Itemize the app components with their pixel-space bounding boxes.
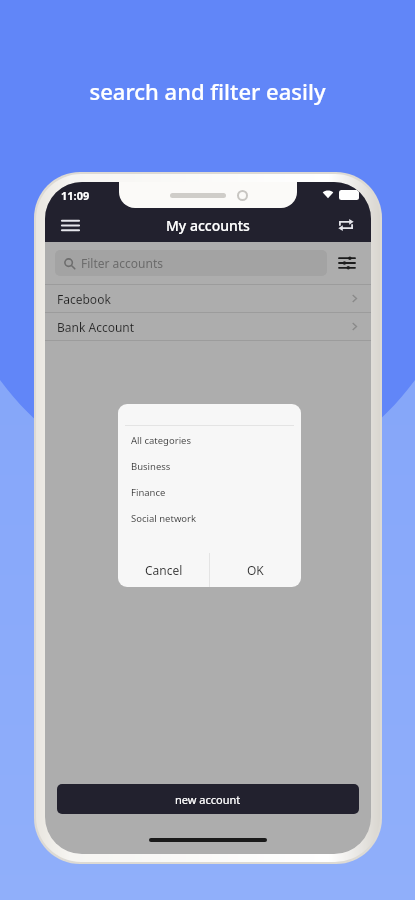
- staticText: Filter accounts: [81, 255, 164, 271]
- staticText: Cancel: [145, 562, 183, 578]
- button[interactable]: Cancel: [118, 553, 209, 587]
- staticText: Facebook: [57, 291, 111, 307]
- staticText: new account: [175, 792, 241, 807]
- staticText: Bank Account: [57, 319, 135, 335]
- button[interactable]: Business: [118, 453, 301, 479]
- staticText: My accounts: [166, 216, 250, 235]
- staticText: search and filter easily: [89, 76, 326, 106]
- button[interactable]: Filter options: [333, 249, 361, 277]
- button[interactable]: Facebook: [45, 285, 371, 312]
- staticText: 11:09: [61, 188, 90, 203]
- button[interactable]: Sync: [329, 208, 363, 242]
- staticText: OK: [247, 562, 264, 578]
- button[interactable]: new account: [57, 784, 359, 814]
- staticText: Social network: [131, 512, 197, 525]
- button[interactable]: OK: [210, 553, 301, 587]
- staticText: Business: [131, 460, 171, 473]
- button[interactable]: Social network: [118, 505, 301, 531]
- button[interactable]: Bank Account: [45, 313, 371, 340]
- button[interactable]: Filter accounts: [55, 250, 327, 276]
- button[interactable]: All categories: [118, 427, 301, 453]
- staticText: Finance: [131, 486, 166, 499]
- staticText: All categories: [131, 434, 191, 447]
- button[interactable]: Finance: [118, 479, 301, 505]
- button[interactable]: Menu: [53, 208, 87, 242]
